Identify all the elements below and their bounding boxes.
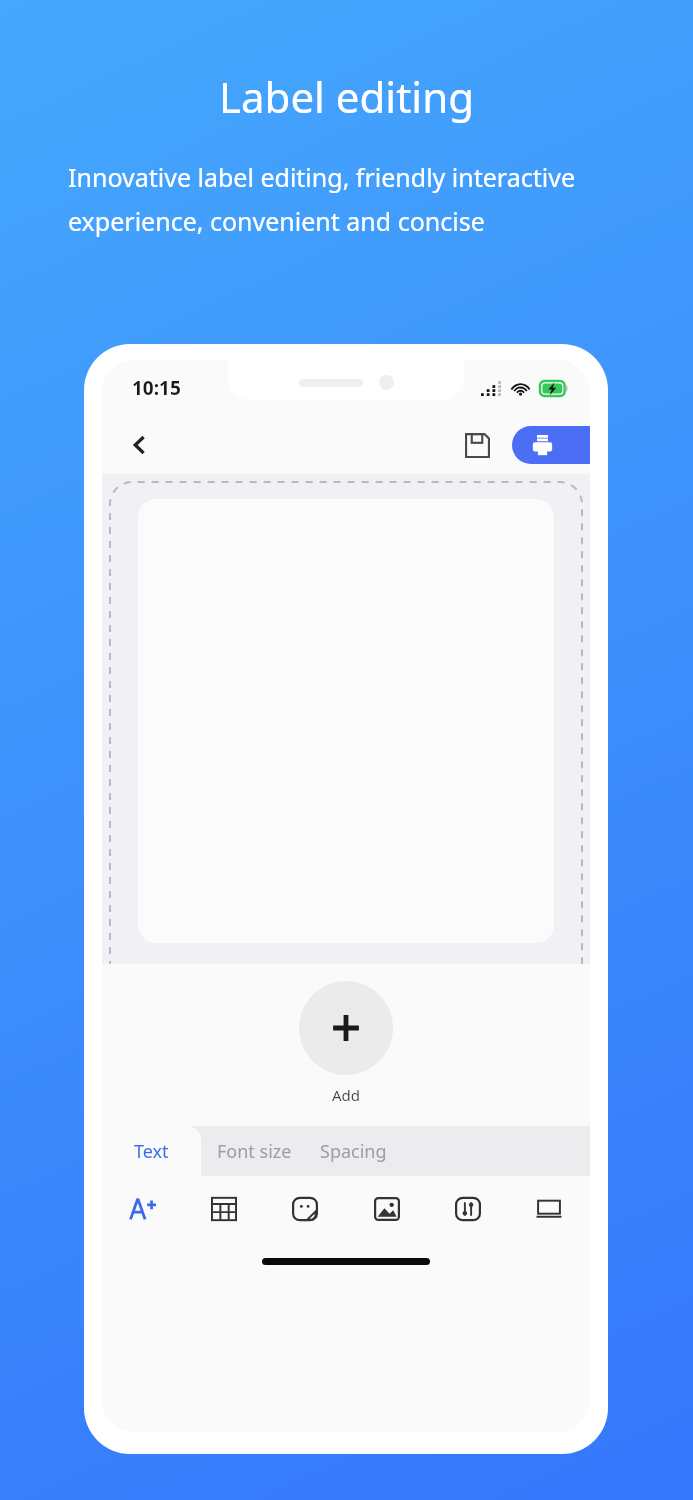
staticText: 10:15 (132, 375, 181, 401)
staticText: Label editing (219, 68, 474, 125)
button[interactable]: Back (118, 423, 162, 467)
button[interactable]: Text (102, 1126, 201, 1176)
button[interactable]: Font size (201, 1126, 308, 1176)
button[interactable]: Template (526, 1186, 572, 1232)
button[interactable]: Save (454, 422, 500, 468)
staticText: Spacing (320, 1139, 387, 1164)
button[interactable]: Add (299, 981, 393, 1075)
button[interactable]: Sticker (282, 1186, 328, 1232)
staticText: Innovative label editing, friendly inter… (68, 160, 633, 238)
button[interactable]: Adjust (445, 1186, 491, 1232)
staticText: Font size (217, 1139, 292, 1164)
staticText: Text (134, 1139, 169, 1164)
button[interactable]: Text style (120, 1186, 166, 1232)
button[interactable]: Print (512, 426, 590, 464)
button[interactable]: Table (201, 1186, 247, 1232)
button[interactable]: Spacing (308, 1126, 399, 1176)
staticText: Add (332, 1085, 361, 1105)
button[interactable]: Image (364, 1186, 410, 1232)
